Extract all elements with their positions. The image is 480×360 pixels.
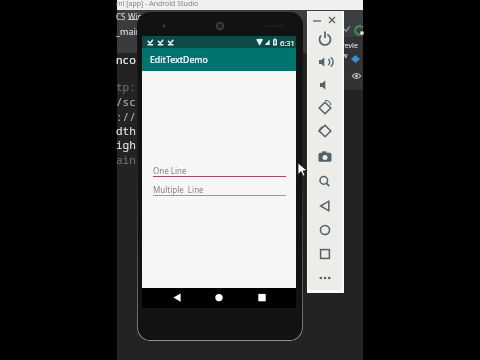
staticText: Windo xyxy=(128,11,153,22)
button[interactable]: Volume up xyxy=(315,52,335,72)
staticText: CS xyxy=(116,11,126,22)
staticText: /sc xyxy=(116,94,136,109)
staticText: ml [app] - Android Studio xyxy=(116,0,199,9)
button[interactable]: Home xyxy=(205,288,233,308)
button[interactable]: EditTextDemo xyxy=(142,48,296,71)
button[interactable]: Back xyxy=(163,288,191,308)
button[interactable]: Take screenshot xyxy=(315,147,335,167)
button[interactable]: Rotate left xyxy=(315,98,335,118)
staticText: tp: xyxy=(116,79,136,94)
button[interactable]: Home xyxy=(315,220,335,240)
button[interactable]: Back xyxy=(315,196,335,216)
button[interactable]: Zoom xyxy=(315,172,335,192)
staticText: ain xyxy=(116,152,136,167)
staticText: EditTextDemo xyxy=(150,54,208,66)
staticText: dth xyxy=(116,123,136,138)
button[interactable]: Recent apps xyxy=(248,288,276,308)
staticText: igh xyxy=(116,137,136,152)
button[interactable]: Overview xyxy=(315,244,335,264)
staticText: review xyxy=(342,41,362,61)
button[interactable]: Close xyxy=(325,13,339,27)
button[interactable]: Multiple Line xyxy=(153,185,286,197)
staticText: :// xyxy=(116,109,136,124)
button[interactable]: Power xyxy=(315,29,335,49)
staticText: Multiple Line xyxy=(153,184,204,195)
staticText: One Line xyxy=(153,165,187,176)
button[interactable]: Minimize xyxy=(310,13,324,27)
button[interactable]: Volume down xyxy=(315,75,335,95)
button[interactable]: More xyxy=(315,268,335,288)
button[interactable]: One Line xyxy=(153,166,286,178)
staticText: _main. xyxy=(116,25,144,37)
staticText: 6:31 xyxy=(280,38,295,48)
staticText: nco xyxy=(116,52,136,67)
button[interactable]: Rotate right xyxy=(315,121,335,141)
